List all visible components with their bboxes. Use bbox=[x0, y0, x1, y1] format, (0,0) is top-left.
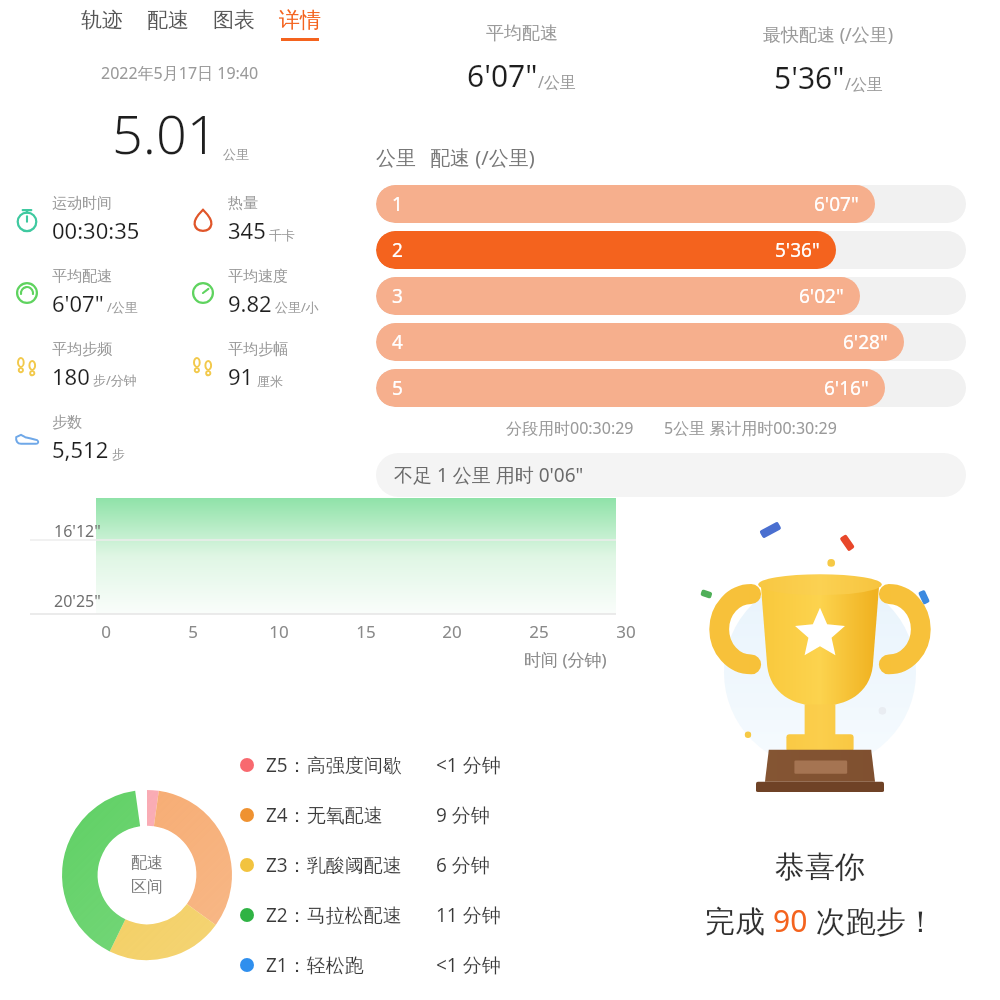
staticText: 配速 bbox=[131, 853, 163, 873]
button[interactable]: Z4：无氧配速 bbox=[240, 790, 570, 840]
button[interactable]: 运动时间 bbox=[8, 192, 140, 247]
button[interactable]: 图表 bbox=[204, 4, 264, 44]
staticText: Z4：无氧配速 bbox=[266, 802, 436, 828]
button[interactable]: 平均步频 bbox=[8, 338, 137, 393]
staticText: 配速 (/公里) bbox=[430, 144, 535, 171]
staticText: 轨迹 bbox=[81, 7, 123, 33]
staticText: 运动时间 bbox=[52, 194, 112, 213]
staticText: 公里/小 bbox=[275, 298, 319, 316]
button[interactable]: 1 bbox=[376, 185, 966, 223]
staticText: 不足 1 公里 用时 0'06" bbox=[394, 462, 584, 488]
button[interactable]: 步数 bbox=[8, 411, 125, 466]
staticText: <1 分钟 bbox=[436, 752, 501, 778]
staticText: 6'07" bbox=[52, 288, 104, 318]
staticText: 180 bbox=[52, 361, 90, 391]
staticText: 平均步幅 bbox=[228, 340, 288, 359]
staticText: 91 bbox=[228, 361, 254, 391]
button[interactable]: 平均步幅 bbox=[184, 338, 288, 393]
staticText: 最快配速 (/公里) bbox=[763, 22, 894, 47]
staticText: 步数 bbox=[52, 413, 82, 432]
staticText: 公里 bbox=[376, 146, 416, 171]
staticText: 1 bbox=[392, 191, 403, 217]
staticText: Z3：乳酸阈配速 bbox=[266, 852, 436, 878]
button[interactable]: 不足 1 公里 用时 0'06" bbox=[376, 453, 966, 497]
staticText: 图表 bbox=[213, 7, 255, 33]
staticText: 5 bbox=[177, 620, 209, 643]
staticText: 5'36" bbox=[775, 237, 820, 263]
button[interactable]: 2 bbox=[376, 231, 966, 269]
staticText: <1 分钟 bbox=[436, 952, 501, 978]
button[interactable]: 平均配速 bbox=[8, 265, 138, 320]
button[interactable]: Z1：轻松跑 bbox=[240, 940, 570, 990]
staticText: 5公里 累计用时00:30:29 bbox=[664, 417, 837, 439]
staticText: 步 bbox=[112, 446, 125, 462]
staticText: 9.82 bbox=[228, 288, 272, 318]
button[interactable]: 详情 bbox=[270, 4, 330, 44]
staticText: 分段用时00:30:29 bbox=[506, 417, 634, 439]
staticText: /公里 bbox=[107, 298, 138, 316]
button[interactable]: 5 bbox=[376, 369, 966, 407]
staticText: 6'07" bbox=[814, 191, 859, 217]
staticText: 2 bbox=[392, 237, 403, 263]
staticText: 5,512 bbox=[52, 434, 109, 464]
button[interactable]: 轨迹 bbox=[72, 4, 132, 44]
button[interactable]: 配速 bbox=[138, 4, 198, 44]
staticText: 区间 bbox=[131, 877, 163, 897]
staticText: 30 bbox=[610, 620, 642, 643]
staticText: 4 bbox=[392, 329, 403, 355]
button[interactable]: Z3：乳酸阈配速 bbox=[240, 840, 570, 890]
staticText: 3 bbox=[392, 283, 403, 309]
staticText: 步/分钟 bbox=[93, 371, 137, 389]
staticText: 345 bbox=[228, 215, 266, 245]
staticText: 20'25" bbox=[54, 590, 101, 612]
staticText: 恭喜你 bbox=[775, 848, 865, 886]
button[interactable]: Z5：高强度间歇 bbox=[240, 740, 570, 790]
staticText: 平均速度 bbox=[228, 267, 288, 286]
staticText: 6 分钟 bbox=[436, 852, 490, 878]
button[interactable]: 4 bbox=[376, 323, 966, 361]
staticText: 平均配速 bbox=[486, 22, 558, 45]
staticText: 热量 bbox=[228, 194, 258, 213]
staticText: 6'02" bbox=[799, 283, 844, 309]
staticText: 11 分钟 bbox=[436, 902, 501, 928]
staticText: 20 bbox=[436, 620, 468, 643]
staticText: 完成 bbox=[705, 900, 773, 941]
staticText: 平均步频 bbox=[52, 340, 112, 359]
staticText: 配速 bbox=[147, 7, 189, 33]
staticText: 5.01 bbox=[112, 96, 218, 170]
staticText: 25 bbox=[523, 620, 555, 643]
staticText: 时间 (分钟) bbox=[524, 648, 607, 671]
staticText: /公里 bbox=[538, 71, 576, 93]
staticText: 00:30:35 bbox=[52, 215, 140, 245]
staticText: 厘米 bbox=[257, 373, 283, 389]
staticText: 次跑步！ bbox=[808, 900, 936, 941]
staticText: Z5：高强度间歇 bbox=[266, 752, 436, 778]
staticText: 6'16" bbox=[824, 375, 869, 401]
staticText: 15 bbox=[350, 620, 382, 643]
staticText: 9 分钟 bbox=[436, 802, 490, 828]
staticText: 平均配速 bbox=[52, 267, 112, 286]
staticText: 千卡 bbox=[269, 227, 295, 243]
button[interactable]: 3 bbox=[376, 277, 966, 315]
staticText: /公里 bbox=[845, 73, 883, 95]
staticText: Z2：马拉松配速 bbox=[266, 902, 436, 928]
staticText: 6'28" bbox=[843, 329, 888, 355]
button[interactable]: Z2：马拉松配速 bbox=[240, 890, 570, 940]
staticText: 6'07" bbox=[467, 55, 538, 96]
staticText: 详情 bbox=[279, 7, 321, 33]
staticText: 5'36" bbox=[774, 57, 845, 98]
staticText: 2022年5月17日 19:40 bbox=[101, 62, 259, 84]
button[interactable]: 平均速度 bbox=[184, 265, 319, 320]
staticText: 16'12" bbox=[54, 520, 101, 542]
staticText: 5 bbox=[392, 375, 403, 401]
staticText: 90 bbox=[773, 900, 808, 941]
button[interactable]: 热量 bbox=[184, 192, 295, 247]
staticText: 0 bbox=[90, 620, 122, 643]
staticText: 10 bbox=[263, 620, 295, 643]
staticText: 公里 bbox=[223, 146, 249, 162]
staticText: Z1：轻松跑 bbox=[266, 952, 436, 978]
